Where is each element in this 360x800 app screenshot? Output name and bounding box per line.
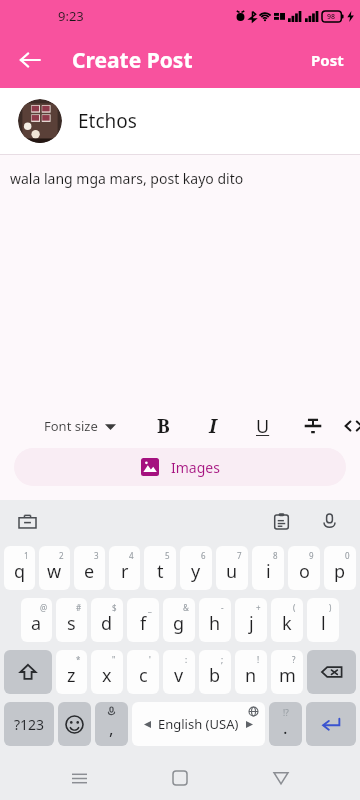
staticText: t	[157, 559, 164, 584]
staticText: 9	[309, 550, 314, 561]
staticText: h	[209, 611, 221, 636]
staticText: f	[140, 611, 147, 636]
button[interactable]: 6	[180, 546, 212, 590]
staticText: $	[112, 602, 117, 613]
button[interactable]: _	[127, 598, 159, 642]
staticText: l	[321, 611, 326, 636]
staticText: "	[112, 654, 116, 665]
staticText: 2	[59, 550, 64, 561]
staticText: ,	[109, 717, 114, 740]
button[interactable]: Bold	[146, 409, 180, 443]
button[interactable]: Underline	[246, 409, 280, 443]
staticText: o	[299, 559, 310, 584]
button[interactable]: 9	[288, 546, 320, 590]
button[interactable]: 3	[74, 546, 105, 590]
staticText: b	[209, 663, 221, 688]
button[interactable]: -	[199, 598, 231, 642]
staticText: English (USA)	[158, 715, 239, 733]
staticText: !?	[283, 707, 289, 718]
staticText: p	[334, 559, 346, 584]
other: Backspace	[320, 660, 344, 684]
button[interactable]: !?	[269, 702, 302, 746]
staticText: k	[282, 611, 292, 636]
staticText: I	[209, 413, 217, 439]
button[interactable]: :	[163, 650, 195, 694]
staticText: j	[249, 611, 254, 636]
button[interactable]: 2	[39, 546, 70, 590]
staticText: .	[283, 716, 288, 739]
staticText: 1	[24, 550, 29, 561]
button[interactable]: Clipboard	[266, 506, 296, 536]
staticText: -	[221, 602, 224, 613]
button[interactable]: Post	[301, 42, 354, 78]
button[interactable]: Emoji	[58, 702, 91, 746]
button[interactable]: @	[21, 598, 52, 642]
staticText: 98	[327, 12, 336, 22]
button[interactable]: Italic	[196, 409, 230, 443]
staticText: 6	[201, 550, 206, 561]
button[interactable]: Etchos	[0, 88, 360, 154]
button[interactable]: English (USA)	[132, 702, 265, 746]
staticText: m	[279, 663, 296, 688]
button[interactable]: Recent apps	[57, 756, 101, 800]
button[interactable]: Back	[8, 38, 52, 82]
button[interactable]: 5	[144, 546, 176, 590]
button[interactable]: ?123	[4, 702, 54, 746]
button[interactable]: Code	[344, 409, 360, 443]
button[interactable]: &	[163, 598, 195, 642]
button[interactable]: 7	[216, 546, 248, 590]
staticText: q	[14, 559, 26, 584]
button[interactable]: Toolbox	[12, 506, 42, 536]
button[interactable]: "	[91, 650, 123, 694]
button[interactable]: !	[235, 650, 267, 694]
staticText: Post	[311, 50, 344, 70]
button[interactable]: 0	[324, 546, 356, 590]
button[interactable]: 1	[4, 546, 35, 590]
button[interactable]: Home	[158, 756, 202, 800]
staticText: 9:23	[58, 7, 84, 25]
staticText: a	[31, 611, 42, 636]
button[interactable]: 8	[252, 546, 284, 590]
staticText: 7	[237, 550, 242, 561]
staticText: y	[191, 559, 201, 584]
button[interactable]: ;	[199, 650, 231, 694]
staticText: +	[256, 602, 261, 613]
staticText: #	[76, 602, 82, 613]
staticText: &	[183, 602, 189, 613]
button[interactable]: Strikethrough	[296, 409, 330, 443]
staticText: @	[40, 602, 48, 613]
staticText: 4	[129, 550, 134, 561]
button[interactable]: Font size	[40, 411, 120, 441]
staticText: Etchos	[78, 108, 137, 134]
button[interactable]: Back	[259, 756, 303, 800]
button[interactable]: (	[271, 598, 303, 642]
staticText: ?123	[14, 715, 45, 734]
staticText: x	[102, 663, 112, 688]
button[interactable]: 4	[109, 546, 140, 590]
button[interactable]: Voice input	[314, 506, 344, 536]
staticText: U	[256, 414, 270, 439]
staticText: s	[67, 611, 76, 636]
staticText: u	[226, 559, 238, 584]
other: Shift	[18, 662, 38, 682]
button[interactable]: ?	[271, 650, 303, 694]
staticText: e	[84, 559, 95, 584]
staticText: v	[174, 663, 184, 688]
staticText: 5	[165, 550, 170, 561]
staticText: w	[47, 559, 62, 584]
button[interactable]: +	[235, 598, 267, 642]
button[interactable]: Backspace	[307, 650, 356, 694]
button[interactable]: *	[56, 650, 87, 694]
button[interactable]: $	[91, 598, 123, 642]
button[interactable]: #	[56, 598, 87, 642]
staticText: ?	[292, 654, 296, 665]
staticText: )	[329, 602, 332, 613]
button[interactable]: Images	[14, 448, 346, 486]
button[interactable]: Shift	[4, 650, 52, 694]
button[interactable]: '	[127, 650, 159, 694]
other: Emoji	[65, 715, 84, 734]
button[interactable]	[306, 702, 356, 746]
button[interactable]: )	[307, 598, 339, 642]
staticText: *	[76, 654, 81, 665]
button[interactable]: ,	[95, 702, 128, 746]
